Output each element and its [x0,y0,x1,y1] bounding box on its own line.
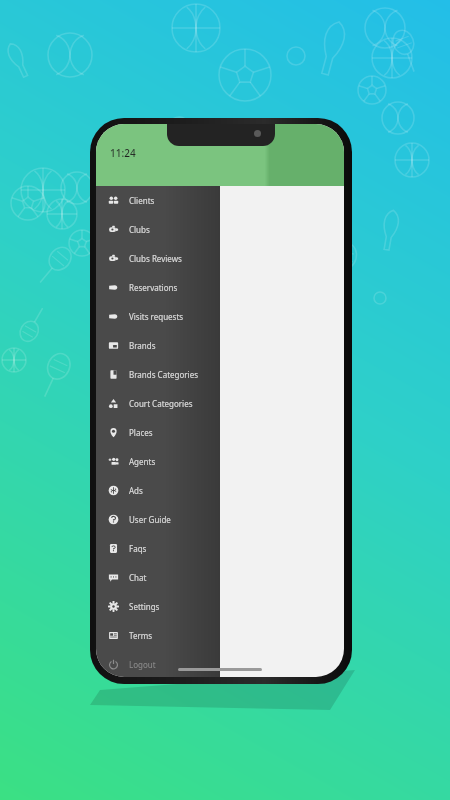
staticText: Visits requests [129,311,184,322]
button[interactable]: Brands [96,331,220,360]
button[interactable]: Reservations [96,273,220,302]
button[interactable]: Settings [96,592,220,621]
button[interactable]: Clients [96,186,220,215]
staticText: Clients [129,195,155,206]
button[interactable]: Clubs [96,215,220,244]
button[interactable]: Agents [96,447,220,476]
staticText: Court Categories [129,398,193,409]
staticText: Clubs [129,224,150,235]
staticText: Settings [129,601,160,612]
staticText: Chat [129,572,147,583]
staticText: Terms [129,630,153,641]
button[interactable]: Logout [96,650,220,677]
staticText: User Guide [129,514,171,525]
button[interactable]: Court Categories [96,389,220,418]
staticText: 11:24 [110,146,136,160]
staticText: Agents [129,456,156,467]
staticText: Brands Categories [129,369,199,380]
staticText: Faqs [129,543,147,554]
staticText: Logout [129,659,156,670]
staticText: Brands [129,340,156,351]
button[interactable]: Clubs Reviews [96,244,220,273]
button[interactable]: Visits requests [96,302,220,331]
button[interactable]: Ads [96,476,220,505]
button[interactable]: Brands Categories [96,360,220,389]
button[interactable]: Faqs [96,534,220,563]
staticText: Reservations [129,282,178,293]
staticText: Places [129,427,153,438]
button[interactable]: Chat [96,563,220,592]
button[interactable]: User Guide [96,505,220,534]
button[interactable]: Places [96,418,220,447]
staticText: Ads [129,485,143,496]
staticText: Clubs Reviews [129,253,182,264]
button[interactable]: Terms [96,621,220,650]
